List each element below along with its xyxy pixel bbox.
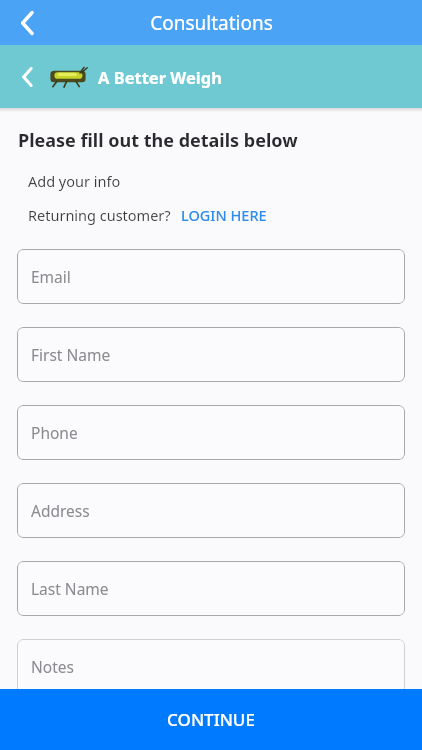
staticText: Notes	[31, 656, 74, 677]
button[interactable]: Back	[0, 0, 46, 45]
button[interactable]: Phone	[17, 405, 405, 460]
staticText: Add your info	[28, 171, 121, 191]
staticText: First Name	[31, 344, 111, 365]
staticText: Please fill out the details below	[18, 128, 298, 153]
staticText: A Better Weigh	[98, 66, 222, 88]
button[interactable]: Notes	[17, 639, 405, 694]
button[interactable]: First Name	[17, 327, 405, 382]
staticText: Consultations	[150, 10, 273, 36]
button[interactable]: Back	[0, 53, 48, 101]
button[interactable]: Address	[17, 483, 405, 538]
button[interactable]: LOGIN HERE	[171, 203, 267, 227]
button[interactable]: Last Name	[17, 561, 405, 616]
staticText: Phone	[31, 422, 78, 443]
staticText: Email	[31, 266, 71, 287]
staticText: Returning customer?	[28, 205, 171, 225]
staticText: LOGIN HERE	[181, 205, 267, 225]
staticText: Last Name	[31, 578, 109, 599]
staticText: CONTINUE	[167, 708, 255, 731]
staticText: Address	[31, 500, 90, 521]
button[interactable]: CONTINUE	[0, 689, 422, 750]
button[interactable]: Email	[17, 249, 405, 304]
